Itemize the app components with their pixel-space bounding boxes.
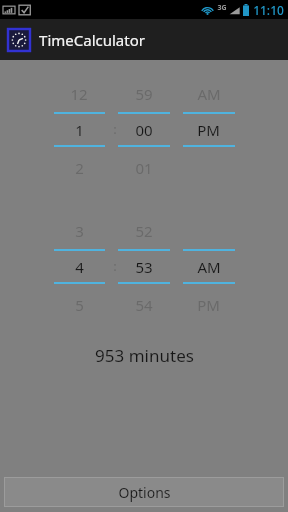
staticText: 01 [135,158,153,175]
staticText: 52 [135,221,153,238]
button[interactable]: 53 [111,257,176,276]
button[interactable]: 00 [111,120,176,139]
staticText: : [113,120,117,138]
staticText: 11:10 [253,2,284,18]
other: App icon [8,29,30,51]
button[interactable]: PM [176,120,241,139]
staticText: PM [197,120,220,139]
staticText: AM [197,84,221,101]
staticText: 3 [75,221,84,238]
button[interactable]: 4 [47,257,111,276]
staticText: 12 [70,84,88,101]
staticText: 59 [135,84,153,101]
button[interactable]: 1 [47,120,111,139]
staticText: 5 [75,295,84,312]
staticText: 2 [75,158,84,175]
staticText: 953 minutes [95,344,194,367]
staticText: : [113,257,117,275]
staticText: TimeCalculator [39,30,145,50]
staticText: PM [197,295,220,312]
staticText: 1 [75,120,84,139]
button[interactable]: AM [176,257,241,276]
staticText: 00 [135,120,153,139]
staticText: 3G [217,3,227,13]
staticText: 54 [135,295,153,312]
staticText: 53 [135,257,153,276]
button[interactable]: Options [4,477,284,507]
staticText: AM [197,257,221,276]
staticText: Options [118,483,171,502]
staticText: 4 [75,257,84,276]
